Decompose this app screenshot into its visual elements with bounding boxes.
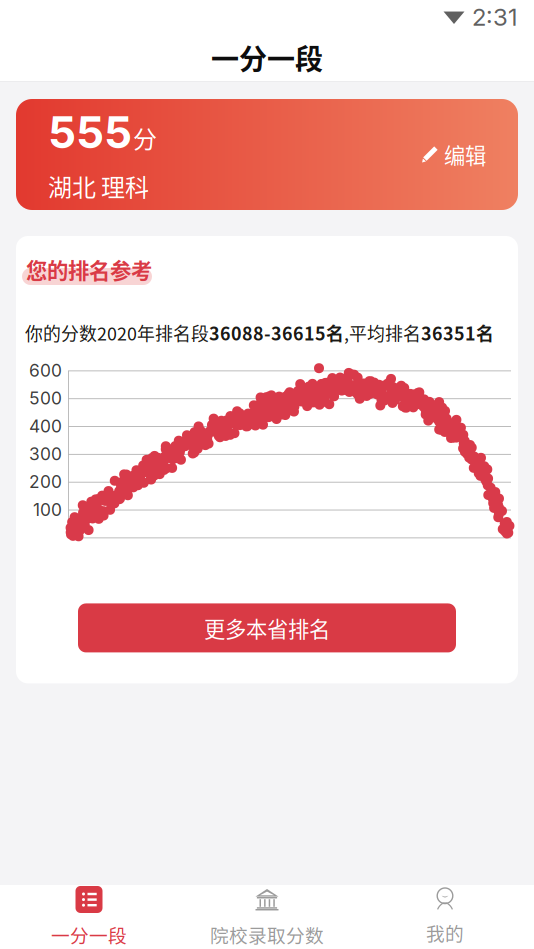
staticText: 院校录取分数 <box>210 921 324 948</box>
staticText: 编辑 <box>444 139 486 170</box>
staticText: 300 <box>29 443 62 464</box>
staticText: 100 <box>33 499 62 520</box>
staticText: 分 <box>133 120 157 155</box>
staticText: 一分一段 <box>51 921 127 948</box>
button[interactable]: 一分一段 <box>0 885 178 949</box>
staticText: 600 <box>29 360 62 381</box>
staticText: 湖北 理科 <box>48 169 149 203</box>
staticText: 200 <box>29 471 62 492</box>
button[interactable]: 院校录取分数 <box>178 885 356 949</box>
button[interactable]: 我的 <box>356 885 534 949</box>
staticText: 更多本省排名 <box>204 612 330 643</box>
staticText: 一分一段 <box>211 37 323 78</box>
staticText: 您的排名参考 <box>26 254 152 285</box>
button[interactable]: 更多本省排名 <box>78 603 456 652</box>
staticText: 555 <box>48 105 132 159</box>
staticText: 我的 <box>426 919 464 946</box>
staticText: 你的分数2020年排名段36088-36615名,平均排名36351名 <box>25 320 494 345</box>
staticText: 400 <box>29 416 62 437</box>
staticText: 2:31 <box>472 2 518 31</box>
staticText: 500 <box>29 388 62 409</box>
button[interactable]: 编辑 <box>417 133 490 176</box>
